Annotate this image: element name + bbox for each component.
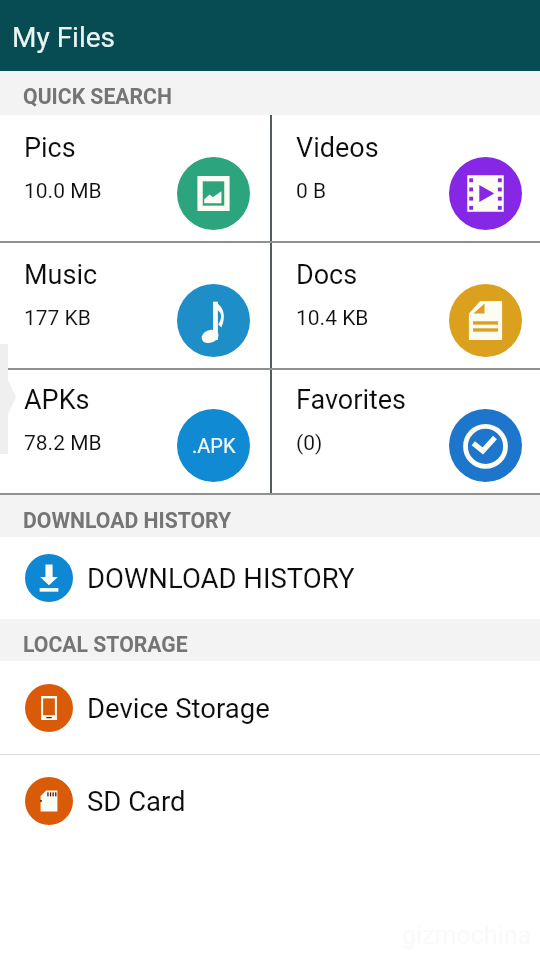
- staticText: Music: [24, 259, 98, 291]
- button[interactable]: SD Card: [0, 755, 540, 847]
- button[interactable]: Docs: [272, 243, 540, 368]
- button[interactable]: Music: [0, 243, 270, 368]
- staticText: 10.4 KB: [296, 306, 369, 331]
- staticText: Favorites: [296, 384, 407, 416]
- staticText: .APK: [192, 434, 236, 457]
- staticText: Device Storage: [87, 692, 270, 724]
- staticText: 78.2 MB: [24, 431, 102, 456]
- staticText: LOCAL STORAGE: [23, 632, 188, 657]
- staticText: 177 KB: [24, 306, 91, 331]
- staticText: 10.0 MB: [24, 179, 102, 204]
- staticText: APKs: [24, 384, 90, 416]
- staticText: 0 B: [296, 179, 327, 204]
- staticText: (0): [296, 431, 323, 456]
- button[interactable]: Pics: [0, 115, 270, 241]
- staticText: QUICK SEARCH: [23, 84, 172, 109]
- button[interactable]: DOWNLOAD HISTORY: [0, 537, 540, 619]
- button[interactable]: Favorites: [272, 370, 540, 493]
- staticText: My Files: [12, 21, 116, 54]
- other: Open navigation drawer: [0, 0, 540, 960]
- staticText: Videos: [296, 132, 379, 164]
- staticText: Pics: [24, 132, 76, 164]
- staticText: DOWNLOAD HISTORY: [87, 562, 355, 594]
- staticText: Docs: [296, 259, 358, 291]
- button[interactable]: APKs: [0, 370, 270, 493]
- button[interactable]: Device Storage: [0, 661, 540, 754]
- staticText: SD Card: [87, 785, 186, 817]
- button[interactable]: Videos: [272, 115, 540, 241]
- staticText: DOWNLOAD HISTORY: [23, 508, 232, 533]
